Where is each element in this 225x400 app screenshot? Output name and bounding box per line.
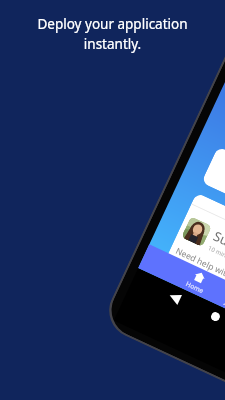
staticText: Deploy your application instantly. bbox=[20, 15, 205, 53]
button[interactable]: Home bbox=[178, 265, 216, 298]
button[interactable] bbox=[201, 146, 225, 246]
staticText: Jobs bbox=[223, 297, 225, 311]
button[interactable]: Home bbox=[201, 301, 225, 330]
button[interactable]: Jobs bbox=[214, 282, 225, 315]
staticText: 10 minutes ago bbox=[207, 244, 225, 270]
button[interactable]: Back bbox=[160, 282, 189, 311]
button[interactable]: Sue bbox=[164, 192, 225, 327]
staticText: Sue bbox=[210, 227, 225, 253]
staticText: Need help with household bbox=[174, 245, 225, 300]
staticText: Home bbox=[184, 279, 205, 295]
